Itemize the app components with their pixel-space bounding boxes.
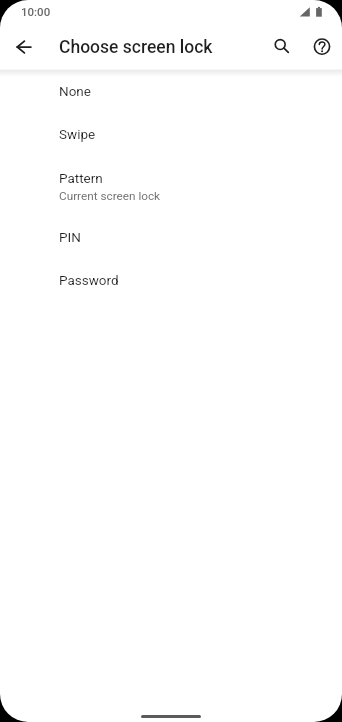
button[interactable]: Search [260,24,304,68]
button[interactable]: Navigate up [0,23,47,70]
staticText: Pattern [59,170,103,186]
button[interactable]: Help [300,24,342,68]
button[interactable]: None [0,75,342,118]
staticText: Swipe [59,126,96,142]
staticText: PIN [59,229,81,245]
button[interactable]: Password [0,264,342,307]
button[interactable]: Swipe [0,118,342,162]
button[interactable]: Pattern [0,162,342,221]
staticText: Password [59,272,119,288]
staticText: Current screen lock [59,189,161,203]
staticText: None [59,83,91,99]
staticText: 10:00 [21,5,51,18]
staticText: Choose screen lock [59,37,213,58]
button[interactable]: PIN [0,221,342,264]
